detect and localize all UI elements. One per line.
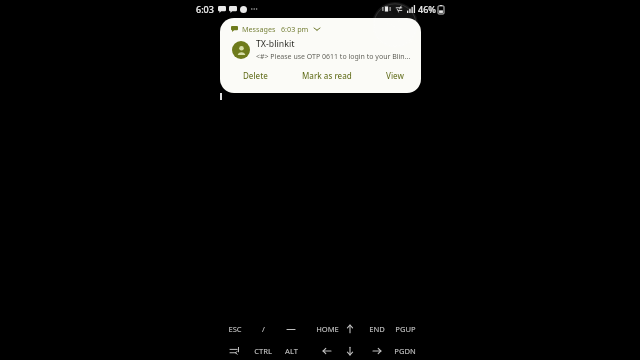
button[interactable]: View	[383, 68, 407, 83]
button[interactable]: Tab	[218, 344, 252, 358]
button[interactable]: PGUP	[388, 322, 422, 336]
button[interactable]: Down	[333, 344, 367, 358]
staticText: 46%	[418, 3, 436, 15]
staticText: Delete	[243, 70, 268, 81]
staticText: END	[369, 324, 385, 334]
staticText: TX-blinkit	[256, 38, 295, 50]
button[interactable]: Minus	[274, 322, 308, 336]
button[interactable]: Right	[360, 344, 394, 358]
button[interactable]: Messages	[220, 18, 421, 93]
staticText: View	[386, 70, 404, 81]
button[interactable]: Mark as read	[299, 68, 355, 83]
button[interactable]: Up	[333, 322, 367, 336]
staticText: Messages	[242, 24, 276, 34]
staticText: ALT	[285, 346, 298, 356]
staticText: CTRL	[254, 346, 272, 356]
staticText: PGUP	[395, 324, 416, 334]
button[interactable]: Delete	[240, 68, 271, 83]
staticText: PGDN	[394, 346, 416, 356]
button[interactable]: PGDN	[388, 344, 422, 358]
button[interactable]: /	[246, 322, 280, 336]
button[interactable]: ALT	[274, 344, 308, 358]
staticText: 6:03	[196, 3, 214, 15]
staticText: HOME	[316, 324, 339, 334]
button[interactable]: END	[360, 322, 394, 336]
staticText: /	[262, 324, 265, 334]
staticText: Mark as read	[302, 70, 352, 81]
staticText: 6:03 pm	[281, 24, 309, 34]
button[interactable]: ESC	[218, 322, 252, 336]
button[interactable]: Left	[310, 344, 344, 358]
button[interactable]: HOME	[310, 322, 344, 336]
button[interactable]: CTRL	[246, 344, 280, 358]
staticText: ESC	[228, 324, 242, 334]
button[interactable]: Messages	[231, 24, 421, 34]
staticText: <#> Please use OTP 0611 to login to your…	[256, 52, 413, 62]
